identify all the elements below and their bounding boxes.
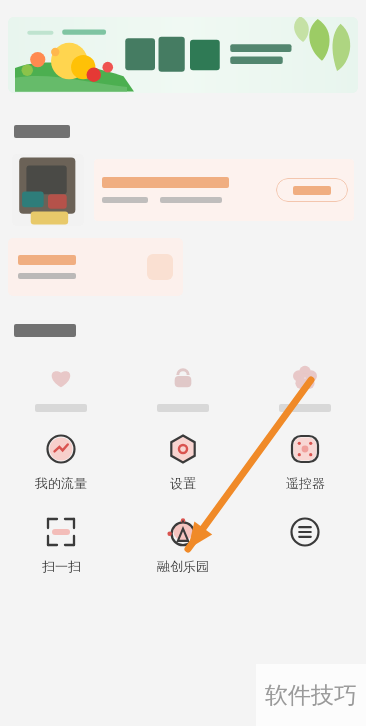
staticText: 设置 [170, 475, 196, 491]
button[interactable] [122, 359, 244, 416]
button[interactable]: 扫一扫 [0, 511, 122, 578]
button[interactable]: 融创乐园 [122, 511, 244, 578]
button[interactable] [0, 154, 366, 226]
button[interactable]: 设置 [122, 428, 244, 495]
button[interactable]: 遥控器 [244, 428, 366, 495]
button[interactable] [0, 359, 122, 416]
button[interactable] [276, 178, 348, 202]
button[interactable]: 我的流量 [0, 428, 122, 495]
staticText: 我的流量 [35, 475, 87, 491]
staticText: 扫一扫 [42, 558, 81, 574]
staticText: 融创乐园 [157, 558, 209, 574]
button[interactable]: 更多 [244, 511, 366, 578]
staticText: 软件技巧 [265, 681, 357, 710]
button[interactable] [8, 17, 358, 93]
staticText: 遥控器 [286, 475, 325, 491]
button[interactable] [8, 238, 183, 296]
button[interactable] [244, 359, 366, 416]
